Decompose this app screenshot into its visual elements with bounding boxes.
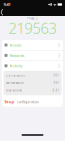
staticText: Assets bbox=[9, 42, 21, 48]
staticText: 001 bbox=[53, 74, 59, 77]
staticText: configuration bbox=[16, 99, 38, 104]
staticText: Activity bbox=[9, 63, 22, 68]
staticText: 9:41 bbox=[3, 2, 10, 7]
staticText: Stop bbox=[4, 99, 14, 104]
staticText: Total volume bbox=[5, 89, 22, 92]
button[interactable]: Back bbox=[1, 9, 6, 16]
staticText: Phase 2 bbox=[27, 17, 38, 20]
button[interactable]: Stop bbox=[2, 97, 63, 107]
staticText: 219563 bbox=[8, 18, 56, 38]
button[interactable]: Rewards bbox=[2, 50, 63, 60]
button[interactable]: Activity bbox=[2, 61, 63, 71]
staticText: First transaction bbox=[5, 74, 25, 77]
button[interactable]: Assets bbox=[2, 40, 63, 50]
staticText: 8.41 bbox=[52, 89, 59, 92]
staticText: Last transaction bbox=[5, 81, 24, 85]
staticText: Rewards bbox=[9, 53, 24, 58]
staticText: 097 bbox=[53, 81, 59, 85]
